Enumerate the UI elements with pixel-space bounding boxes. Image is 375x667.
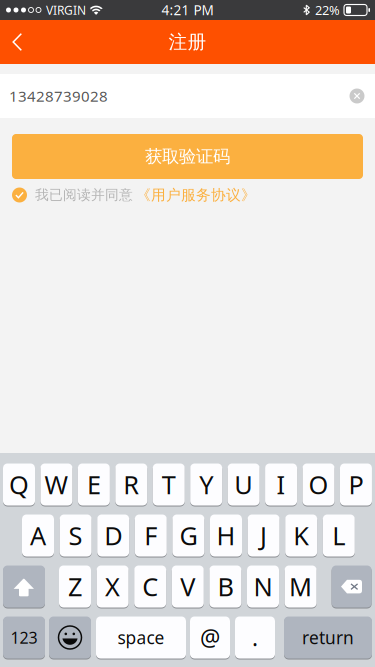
button[interactable]: H — [210, 514, 242, 557]
button[interactable]: E — [78, 463, 110, 506]
button[interactable]: Z — [59, 565, 91, 608]
button[interactable]: Shift — [3, 565, 45, 608]
button[interactable]: V — [172, 565, 204, 608]
button[interactable]: Delete — [332, 565, 372, 608]
button[interactable]: R — [115, 463, 147, 506]
button[interactable]: L — [323, 514, 355, 557]
staticText: Q — [9, 468, 29, 501]
button[interactable]: C — [134, 565, 166, 608]
staticText: space — [117, 626, 164, 649]
button[interactable]: Y — [190, 463, 222, 506]
staticText: V — [180, 570, 195, 603]
staticText: W — [44, 468, 68, 501]
staticText: N — [253, 570, 272, 603]
staticText: T — [162, 468, 176, 501]
button[interactable]: . — [235, 616, 275, 659]
staticText: 123 — [10, 627, 37, 648]
button[interactable]: J — [248, 514, 280, 557]
button[interactable]: I — [265, 463, 297, 506]
button[interactable]: A — [22, 514, 54, 557]
staticText: 注册 — [168, 30, 206, 53]
button[interactable]: T — [153, 463, 185, 506]
button[interactable]: N — [247, 565, 279, 608]
staticText: M — [289, 570, 312, 603]
staticText: . — [252, 622, 258, 652]
button[interactable]: S — [60, 514, 92, 557]
button[interactable]: @ — [190, 616, 230, 659]
button[interactable]: X — [97, 565, 129, 608]
staticText: C — [142, 570, 158, 603]
staticText: H — [216, 519, 235, 552]
staticText: L — [332, 519, 345, 552]
button[interactable]: space — [96, 616, 186, 659]
staticText: G — [179, 519, 197, 552]
staticText: K — [293, 519, 309, 552]
button[interactable]: M — [285, 565, 317, 608]
button[interactable]: K — [285, 514, 317, 557]
staticText: VIRGIN — [46, 2, 86, 18]
staticText: A — [30, 519, 46, 552]
button[interactable]: Q — [3, 463, 35, 506]
button[interactable]: Clear text — [341, 74, 373, 118]
button[interactable]: D — [97, 514, 129, 557]
button[interactable]: 获取验证码 — [12, 134, 363, 179]
button[interactable]: Emoji keyboard — [49, 616, 91, 659]
staticText: 13428739028 — [9, 86, 108, 106]
staticText: B — [217, 570, 233, 603]
button[interactable]: B — [209, 565, 241, 608]
staticText: 《用户服务协议》 — [136, 186, 256, 204]
staticText: Y — [199, 468, 213, 501]
staticText: I — [277, 468, 286, 501]
staticText: S — [69, 519, 83, 552]
button[interactable]: F — [135, 514, 167, 557]
button[interactable]: return — [284, 616, 372, 659]
button[interactable]: O — [302, 463, 334, 506]
staticText: F — [144, 519, 157, 552]
staticText: U — [234, 468, 253, 501]
staticText: P — [348, 468, 363, 501]
staticText: D — [104, 519, 122, 552]
staticText: @ — [200, 622, 220, 652]
button[interactable]: U — [228, 463, 260, 506]
staticText: R — [123, 468, 139, 501]
staticText: E — [87, 468, 101, 501]
button[interactable]: G — [172, 514, 204, 557]
staticText: 我已阅读并同意 — [35, 186, 133, 204]
button[interactable]: 123 — [3, 616, 45, 659]
button[interactable]: W — [40, 463, 72, 506]
staticText: return — [302, 626, 354, 649]
staticText: Z — [68, 570, 82, 603]
staticText: 获取验证码 — [145, 146, 230, 167]
staticText: X — [105, 570, 120, 603]
button[interactable]: Back — [0, 20, 52, 64]
staticText: J — [260, 519, 267, 552]
staticText: O — [308, 468, 328, 501]
button[interactable]: 我已阅读并同意 — [0, 182, 375, 208]
staticText: 22% — [315, 1, 340, 19]
button[interactable]: P — [340, 463, 372, 506]
staticText: 4:21 PM — [161, 1, 213, 19]
